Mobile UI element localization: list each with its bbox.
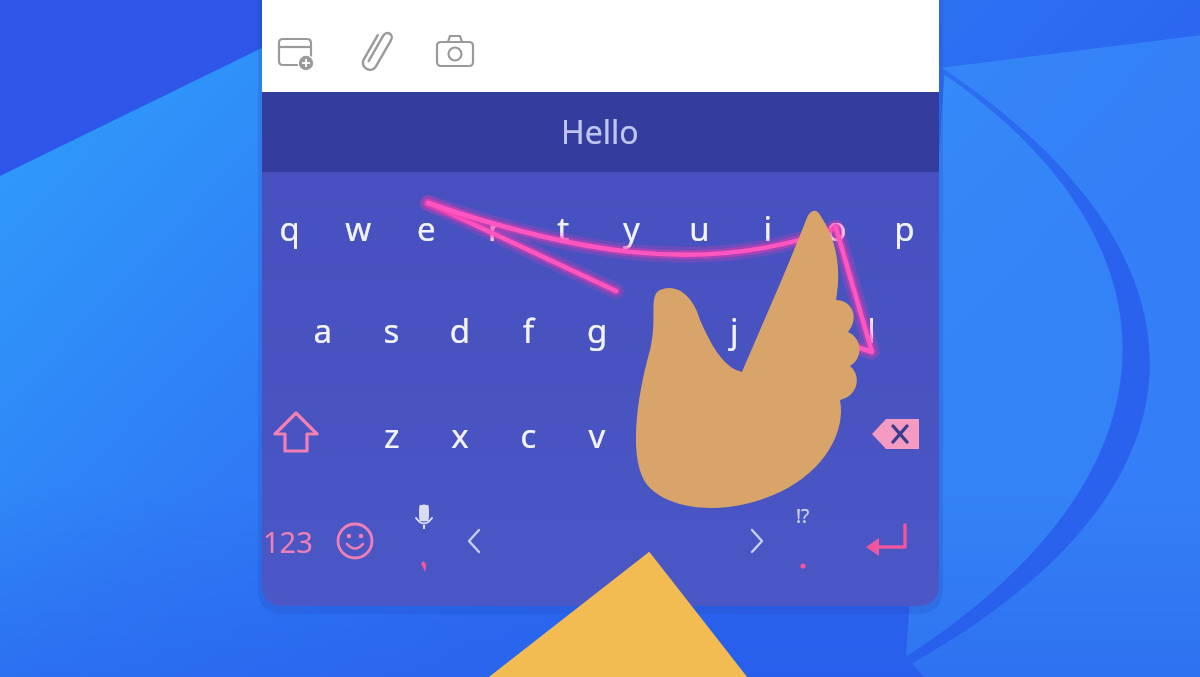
button[interactable]: Key r — [464, 195, 524, 261]
button[interactable]: Key m — [771, 402, 831, 468]
button[interactable]: Key g — [567, 297, 627, 363]
button[interactable]: Backspace — [866, 402, 930, 468]
button[interactable]: Key q — [260, 195, 320, 261]
button[interactable]: Numbers — [262, 508, 318, 574]
button[interactable]: Key e — [396, 195, 456, 261]
button[interactable]: Key z — [362, 402, 422, 468]
button[interactable]: Symbols — [777, 490, 829, 542]
button[interactable]: Key j — [704, 297, 764, 363]
button[interactable]: Key d — [430, 297, 490, 363]
button[interactable]: Key x — [430, 402, 490, 468]
button[interactable]: Key f — [498, 297, 558, 363]
button[interactable]: Key y — [601, 195, 661, 261]
button[interactable]: Voice input — [398, 490, 450, 542]
button[interactable]: Key u — [669, 195, 729, 261]
button[interactable]: Key c — [498, 402, 558, 468]
button[interactable]: Emoji — [327, 508, 383, 574]
button[interactable]: Enter — [856, 508, 918, 574]
button[interactable]: Key l — [841, 297, 901, 363]
button[interactable]: Key a — [293, 297, 353, 363]
button[interactable]: Key o — [806, 195, 866, 261]
button[interactable]: Attach file — [359, 30, 393, 74]
button[interactable]: Key v — [566, 402, 626, 468]
button[interactable]: Key i — [738, 195, 798, 261]
button[interactable]: Next — [731, 514, 783, 566]
button[interactable]: Key h — [636, 297, 696, 363]
button[interactable]: Key b — [635, 402, 695, 468]
button[interactable]: Shift — [266, 402, 328, 468]
button[interactable]: Camera — [437, 30, 475, 74]
button[interactable]: Key t — [533, 195, 593, 261]
button[interactable]: Key s — [361, 297, 421, 363]
button[interactable]: Previous — [448, 514, 500, 566]
button[interactable]: Insert card — [279, 30, 313, 74]
button[interactable]: Key p — [874, 195, 934, 261]
button[interactable]: Key w — [328, 195, 388, 261]
